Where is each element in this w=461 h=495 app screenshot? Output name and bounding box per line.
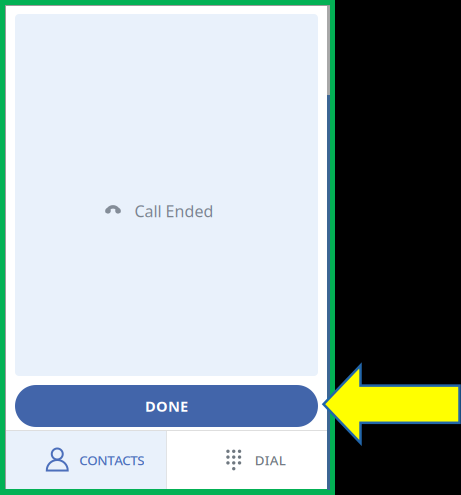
staticText: DONE <box>145 396 188 416</box>
button[interactable]: CONTACTS <box>6 431 166 489</box>
staticText: DIAL <box>255 451 286 469</box>
button[interactable]: DIAL <box>166 431 327 489</box>
staticText: CONTACTS <box>79 451 144 469</box>
staticText: Call Ended <box>134 200 213 222</box>
button[interactable]: DONE <box>15 385 318 427</box>
